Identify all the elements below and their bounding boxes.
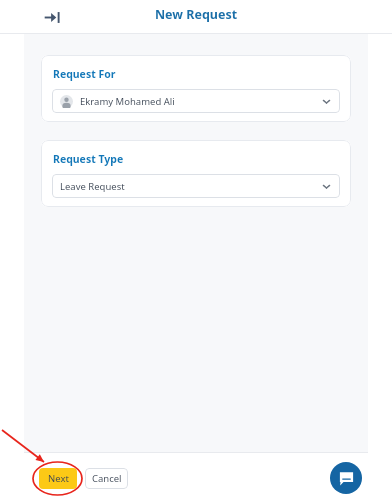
staticText: Cancel bbox=[92, 472, 122, 485]
button[interactable]: Leave Request bbox=[52, 174, 340, 198]
button[interactable]: Ekramy Mohamed Ali bbox=[52, 89, 340, 113]
staticText: Request Type bbox=[53, 152, 124, 166]
button[interactable]: Next bbox=[39, 468, 77, 489]
staticText: New Request bbox=[0, 6, 392, 23]
staticText: Ekramy Mohamed Ali bbox=[80, 95, 175, 108]
staticText: Next bbox=[48, 472, 69, 485]
button[interactable]: Cancel bbox=[85, 468, 128, 489]
staticText: Leave Request bbox=[60, 180, 125, 193]
staticText: Request For bbox=[53, 67, 116, 81]
button[interactable]: Collapse menu bbox=[38, 3, 66, 31]
button[interactable]: Open chat bbox=[330, 462, 362, 494]
